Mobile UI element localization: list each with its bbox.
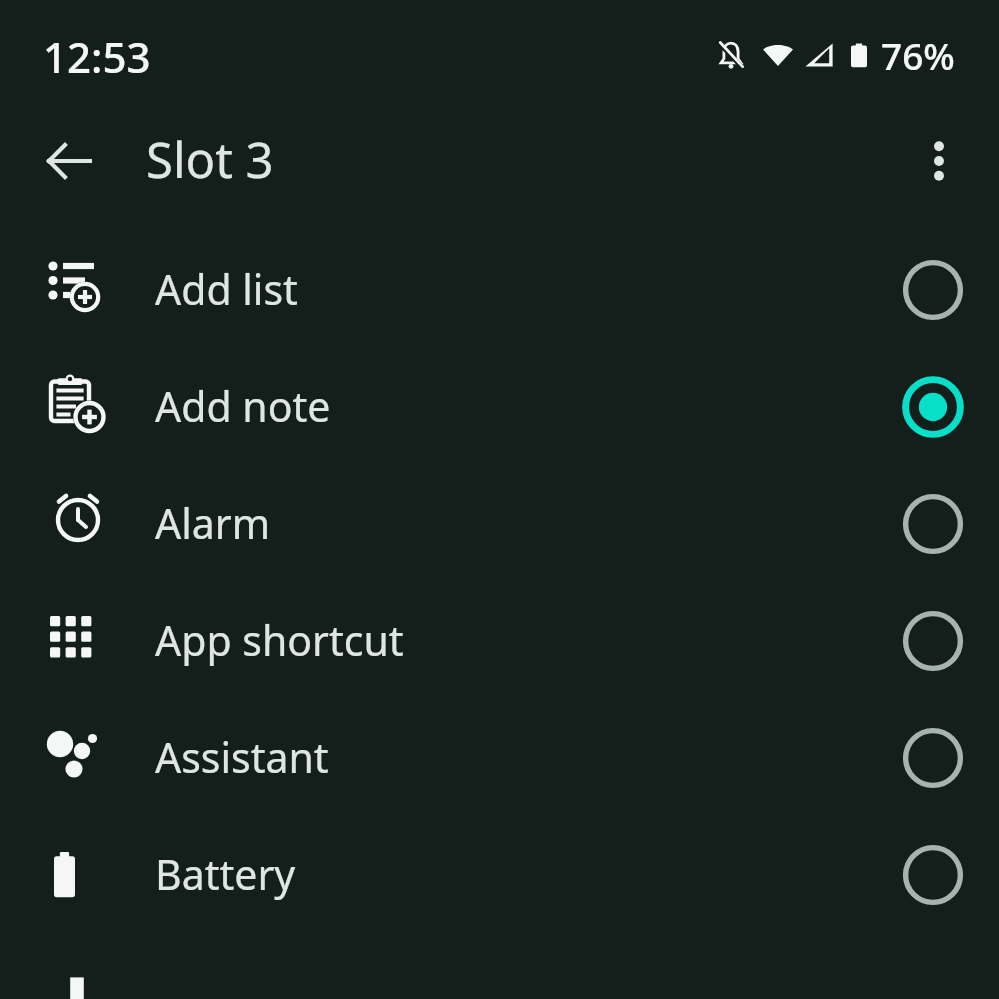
staticText: App shortcut [155,612,404,668]
staticText: Add note [155,378,331,434]
button[interactable]: Back [33,125,105,197]
button[interactable]: Assistant [0,699,999,816]
staticText: Alarm [155,495,271,551]
button[interactable]: Add list [0,231,999,348]
button[interactable]: App shortcut [0,582,999,699]
button[interactable]: Alarm [0,465,999,582]
staticText: Add list [155,261,298,317]
staticText: 76% [881,30,955,80]
staticText: Battery [155,846,296,902]
staticText: 12:53 [43,28,151,85]
button[interactable]: Add note [0,348,999,465]
button[interactable]: Battery [0,816,999,933]
staticText: Assistant [155,729,329,785]
button[interactable]: More options [901,123,977,199]
staticText: Slot 3 [146,126,274,193]
